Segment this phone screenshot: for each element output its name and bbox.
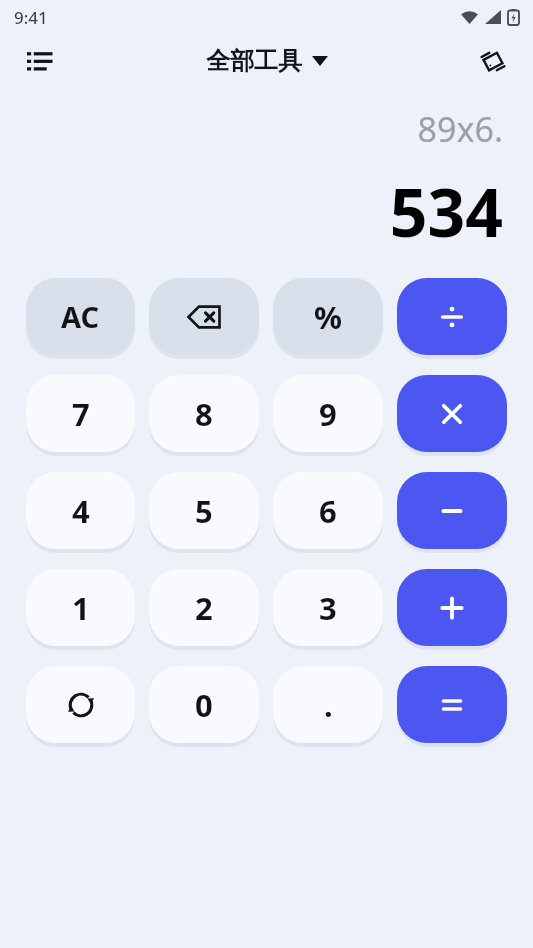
staticText: 2 [195,587,213,629]
staticText: % [314,296,342,338]
button[interactable]: 9 [273,375,383,452]
staticText: 6 [319,490,337,532]
button[interactable]: 8 [149,375,259,452]
button[interactable]: Menu [18,39,62,83]
button[interactable]: 全部工具 [206,46,328,76]
button[interactable]: Rotate screen [471,39,515,83]
button[interactable]: 5 [149,472,259,549]
button[interactable]: Multiply [397,375,507,452]
button[interactable]: . [273,666,383,743]
staticText: 5 [195,490,213,532]
staticText: 534 [389,166,503,256]
button[interactable]: Swap [26,666,135,743]
staticText: 9 [319,393,337,435]
staticText: AC [61,297,100,336]
button[interactable]: 0 [149,666,259,743]
button[interactable]: 7 [26,375,135,452]
button[interactable]: 4 [26,472,135,549]
button[interactable]: Equals [397,666,507,743]
staticText: . [324,684,333,726]
staticText: 8 [195,393,213,435]
staticText: 全部工具 [206,46,302,76]
button[interactable]: 6 [273,472,383,549]
staticText: 0 [195,684,213,726]
button[interactable]: Subtract [397,472,507,549]
button[interactable]: Backspace [149,278,259,355]
staticText: 3 [319,587,337,629]
staticText: 4 [72,490,90,532]
staticText: 7 [72,393,90,435]
button[interactable]: AC [26,278,135,355]
button[interactable]: Add [397,569,507,646]
staticText: 89x6. [417,106,503,152]
staticText: 1 [72,587,90,629]
button[interactable]: % [273,278,383,355]
button[interactable]: 2 [149,569,259,646]
button[interactable]: 3 [273,569,383,646]
staticText: 9:41 [14,6,48,29]
button[interactable]: Divide [397,278,507,355]
button[interactable]: 1 [26,569,135,646]
